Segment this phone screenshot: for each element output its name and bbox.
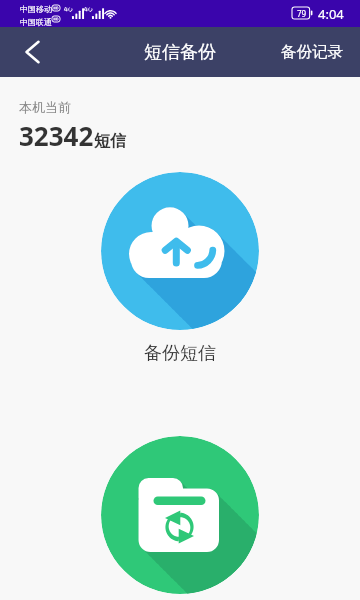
staticText: 备份记录 [281,42,343,62]
button[interactable]: 返回 [0,27,52,77]
staticText: 短信 [94,131,126,151]
button[interactable]: 备份记录 [267,27,360,77]
staticText: 短信备份 [144,41,216,64]
staticText: 32342 [19,118,94,153]
staticText: 4:04 [318,5,344,23]
staticText: 本机当前 [19,99,71,115]
button[interactable]: 备份短信 [101,172,259,330]
staticText: 中国移动 [20,4,52,14]
button[interactable]: 恢复短信 [101,436,259,594]
staticText: 中国联通 [20,17,52,27]
staticText: 备份短信 [144,342,216,365]
staticText: 79 [297,8,307,19]
